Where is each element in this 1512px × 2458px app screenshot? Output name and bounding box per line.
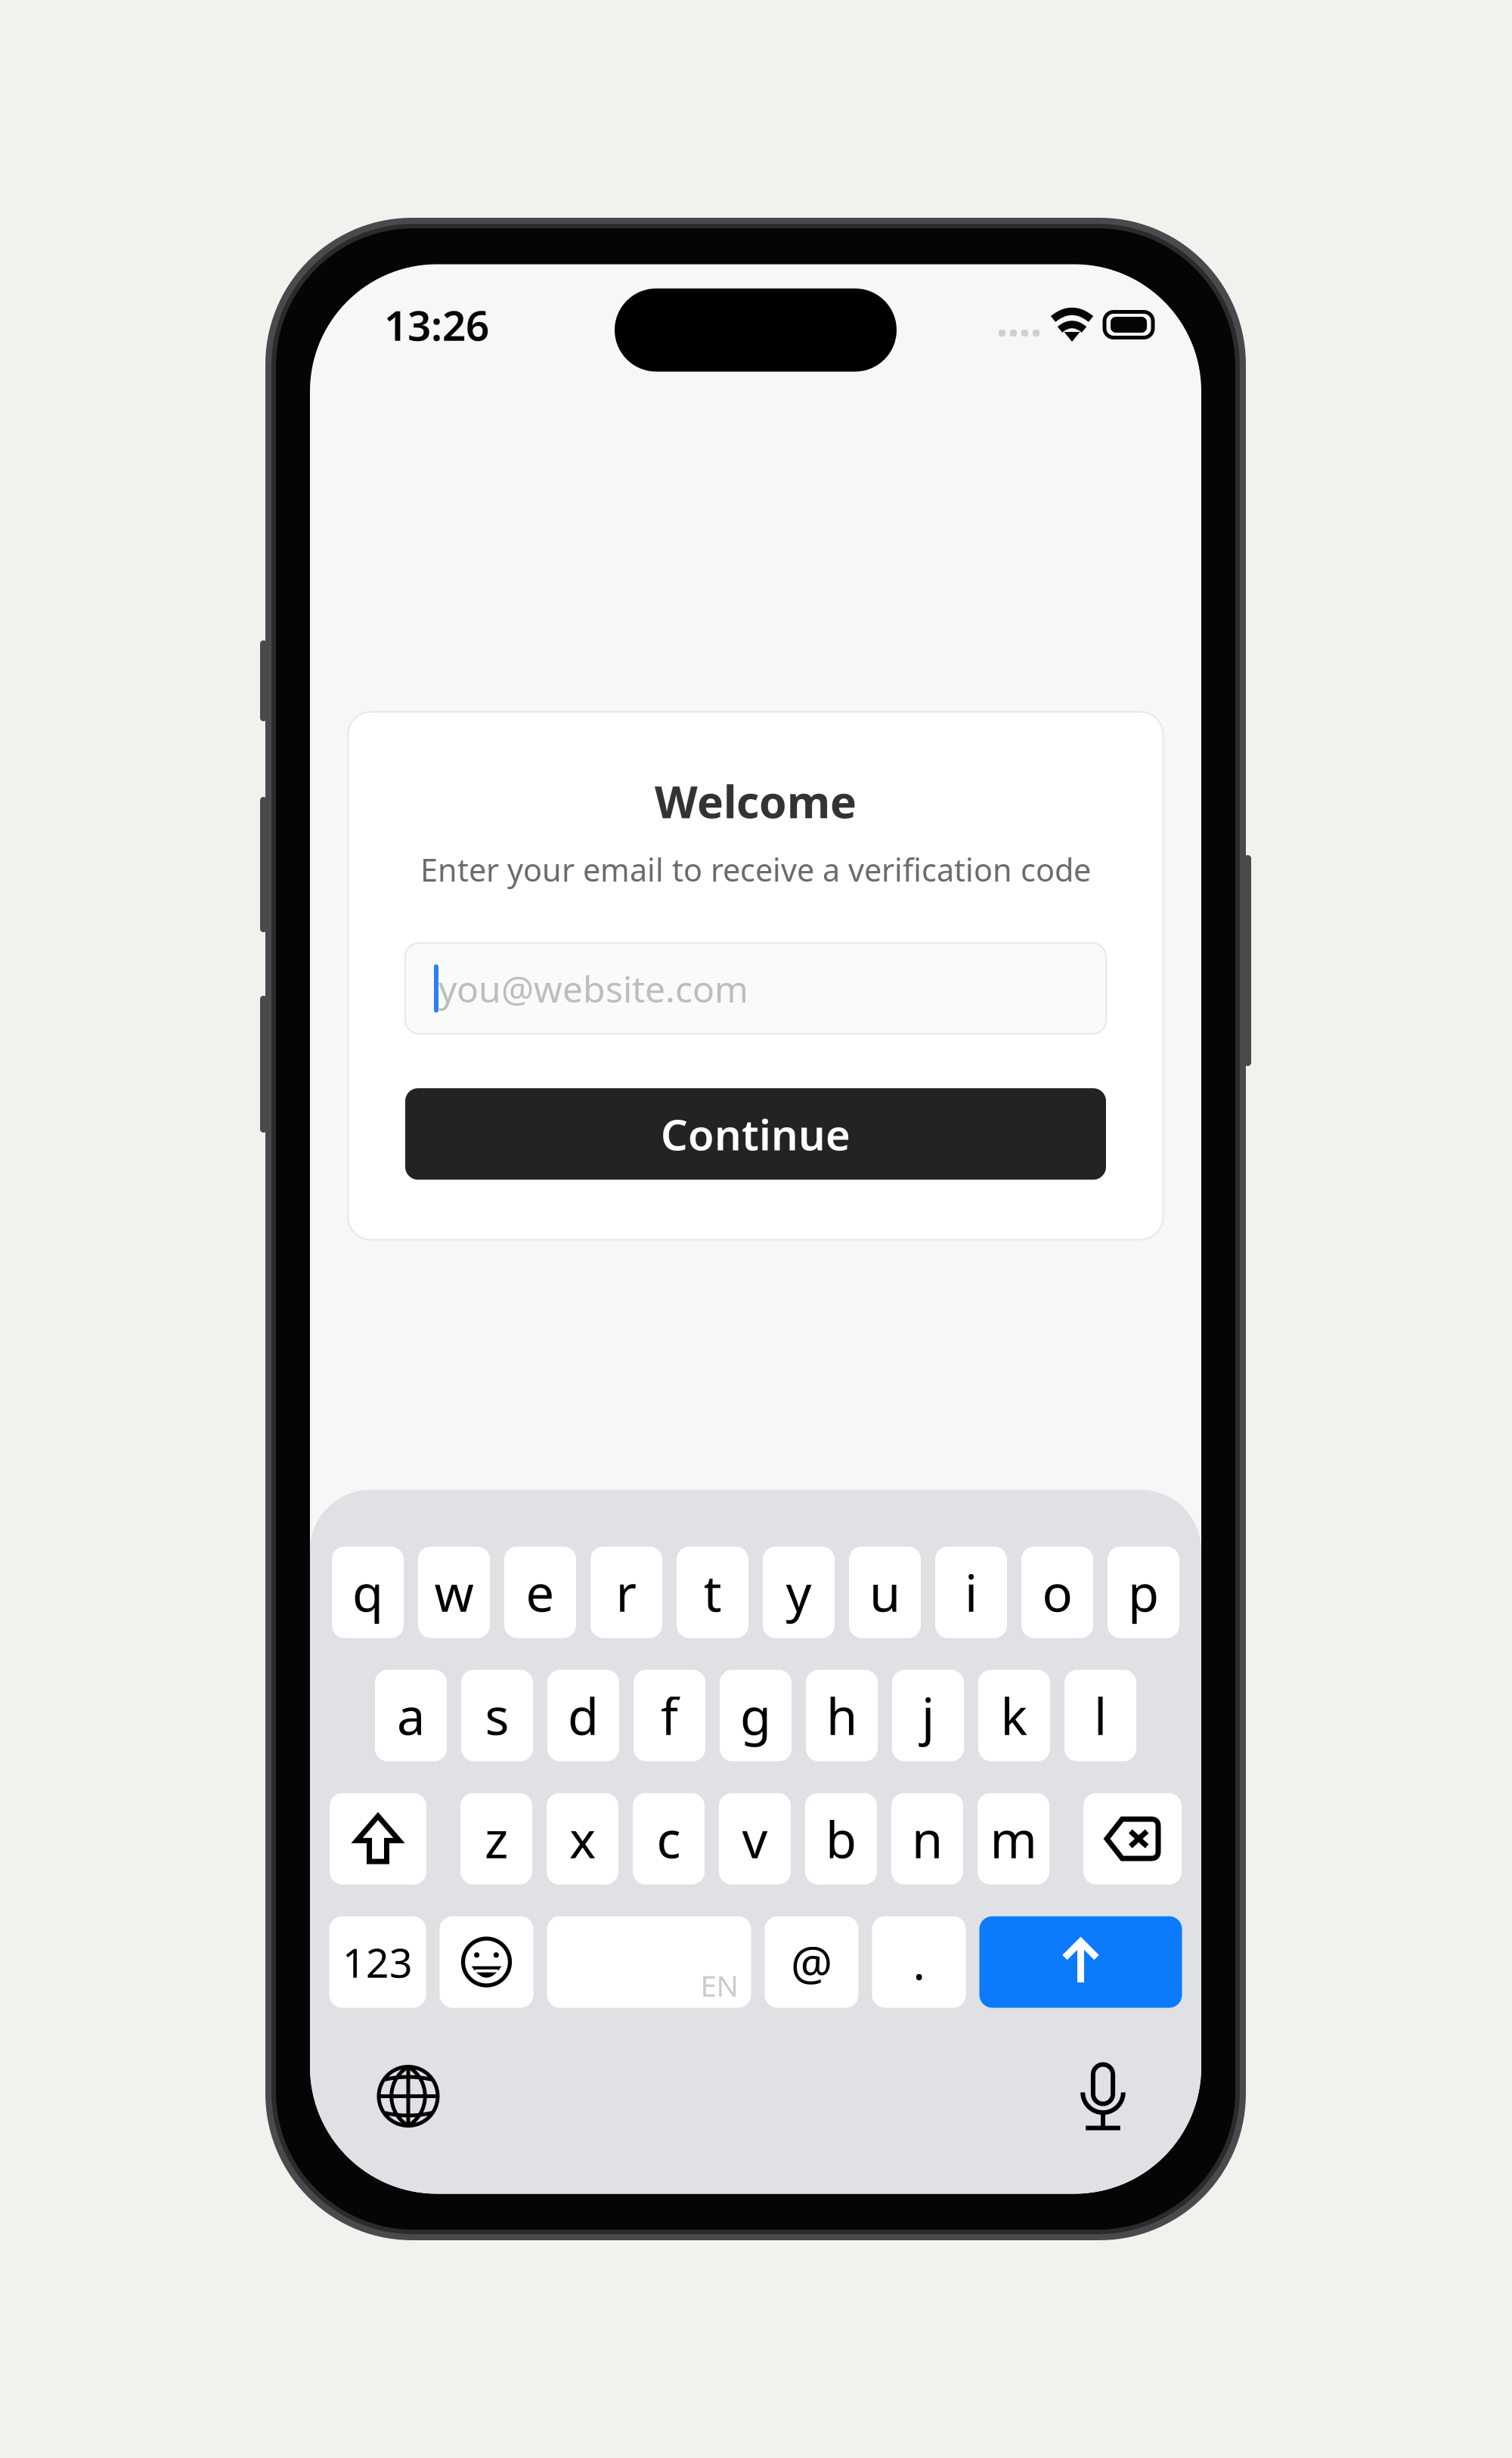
staticText: you@website.com <box>438 964 748 1012</box>
button[interactable]: . <box>872 1916 966 2008</box>
staticText: p <box>1128 1559 1159 1626</box>
button[interactable]: h <box>806 1670 878 1761</box>
button[interactable]: o <box>1021 1547 1093 1638</box>
staticText: x <box>569 1805 596 1872</box>
staticText: m <box>990 1805 1037 1872</box>
staticText: d <box>568 1682 599 1749</box>
staticText: . <box>913 1931 925 1993</box>
button[interactable]: x <box>547 1793 618 1885</box>
staticText: g <box>740 1682 771 1749</box>
button[interactable]: Delete <box>1083 1793 1182 1885</box>
staticText: a <box>397 1682 425 1749</box>
button[interactable]: a <box>375 1670 447 1761</box>
button[interactable]: b <box>805 1793 877 1885</box>
button[interactable]: Shift <box>330 1793 426 1885</box>
staticText: l <box>1094 1682 1107 1749</box>
button[interactable]: w <box>418 1547 490 1638</box>
staticText: EN <box>700 1966 738 2005</box>
staticText: w <box>434 1559 474 1626</box>
button[interactable]: c <box>633 1793 705 1885</box>
button[interactable]: Continue <box>405 1088 1106 1180</box>
staticText: q <box>352 1559 383 1626</box>
button[interactable]: f <box>634 1670 705 1761</box>
button[interactable]: z <box>460 1793 532 1885</box>
staticText: s <box>485 1682 509 1749</box>
staticText: z <box>485 1805 508 1872</box>
staticText: o <box>1042 1559 1072 1626</box>
button[interactable]: p <box>1108 1547 1179 1638</box>
staticText: f <box>661 1682 678 1749</box>
button[interactable]: u <box>849 1547 921 1638</box>
button[interactable]: g <box>720 1670 792 1761</box>
staticText: e <box>526 1559 555 1626</box>
staticText: 13:26 <box>384 297 489 352</box>
staticText: Enter your email to receive a verificati… <box>420 849 1091 890</box>
button[interactable]: i <box>935 1547 1007 1638</box>
button[interactable]: k <box>978 1670 1050 1761</box>
staticText: u <box>869 1559 900 1626</box>
staticText: i <box>965 1559 978 1626</box>
staticText: t <box>703 1559 722 1626</box>
staticText: j <box>922 1682 934 1749</box>
button[interactable]: v <box>719 1793 791 1885</box>
button[interactable]: t <box>677 1547 748 1638</box>
button[interactable]: r <box>590 1547 662 1638</box>
staticText: n <box>912 1805 943 1872</box>
button[interactable]: EN <box>547 1916 751 2008</box>
button[interactable]: d <box>547 1670 619 1761</box>
button[interactable]: j <box>892 1670 964 1761</box>
button[interactable]: y <box>763 1547 835 1638</box>
button[interactable]: n <box>891 1793 963 1885</box>
staticText: Welcome <box>655 772 857 830</box>
staticText: k <box>1001 1682 1028 1749</box>
staticText: r <box>616 1559 637 1626</box>
button[interactable]: Send <box>979 1916 1182 2008</box>
button[interactable]: m <box>978 1793 1049 1885</box>
staticText: Continue <box>661 1106 850 1162</box>
staticText: h <box>826 1682 857 1749</box>
staticText: 123 <box>342 1935 413 1989</box>
button[interactable]: 123 <box>329 1916 426 2008</box>
button[interactable]: Dictation <box>1005 2055 1201 2138</box>
staticText: b <box>826 1805 857 1872</box>
staticText: y <box>786 1559 812 1626</box>
button[interactable]: s <box>461 1670 533 1761</box>
button[interactable]: e <box>504 1547 576 1638</box>
button[interactable]: Next keyboard <box>310 2055 507 2138</box>
staticText: @ <box>791 1931 832 1993</box>
button[interactable]: q <box>332 1547 404 1638</box>
button[interactable]: @ <box>765 1916 858 2008</box>
button[interactable]: Emoji <box>440 1916 533 2008</box>
staticText: v <box>742 1805 768 1872</box>
staticText: c <box>657 1805 681 1872</box>
button[interactable]: l <box>1064 1670 1136 1761</box>
